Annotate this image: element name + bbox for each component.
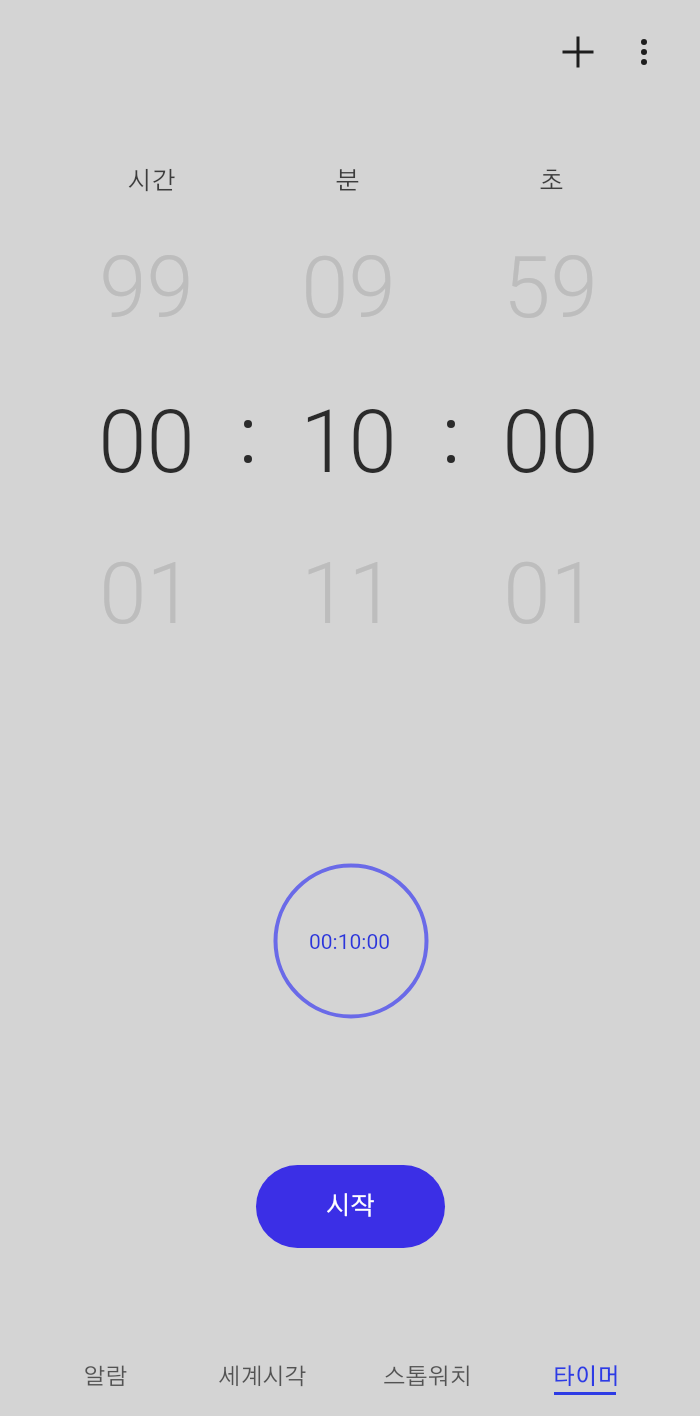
staticText: 09 [301, 238, 396, 338]
staticText: 99 [99, 238, 194, 338]
staticText: 01 [99, 544, 194, 644]
staticText: 59 [503, 238, 598, 338]
staticText: 시간 [127, 169, 176, 194]
staticText: 초 [539, 169, 564, 194]
staticText: 00 [98, 391, 195, 493]
staticText: 시작 [326, 1194, 376, 1220]
staticText: 00:10:00 [309, 930, 390, 955]
staticText: 세계시각 [218, 1366, 307, 1389]
staticText: 10 [300, 391, 397, 493]
staticText: 분 [335, 169, 360, 194]
staticText: 01 [503, 544, 598, 644]
staticText: 알람 [83, 1366, 128, 1389]
staticText: 11 [301, 544, 396, 644]
staticText: 00 [502, 391, 599, 493]
staticText: 스톱워치 [383, 1366, 472, 1389]
staticText: 타이머 [552, 1366, 620, 1389]
